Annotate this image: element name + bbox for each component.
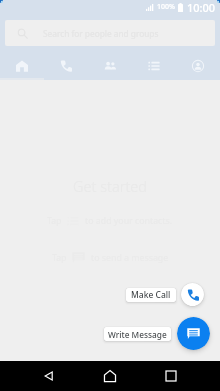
button[interactable]: Account — [176, 52, 220, 80]
staticText: Make Call — [131, 289, 171, 301]
button[interactable]: Write Message — [104, 327, 171, 341]
staticText: 100% — [157, 2, 175, 12]
button[interactable]: Back — [34, 361, 64, 391]
button[interactable]: Make call — [181, 283, 204, 306]
staticText: Write Message — [108, 329, 167, 340]
button[interactable]: Recent apps — [156, 361, 186, 391]
button[interactable]: Contacts — [88, 52, 132, 80]
button[interactable]: Calls — [44, 52, 88, 80]
button[interactable]: Make Call — [126, 288, 176, 302]
staticText: Search for people and groups — [43, 28, 159, 39]
button[interactable]: Home — [0, 52, 44, 80]
button[interactable]: Home — [95, 361, 125, 391]
staticText: 10:00 — [187, 0, 216, 14]
button[interactable]: Menu — [132, 52, 176, 80]
button[interactable]: Write message — [177, 317, 210, 350]
